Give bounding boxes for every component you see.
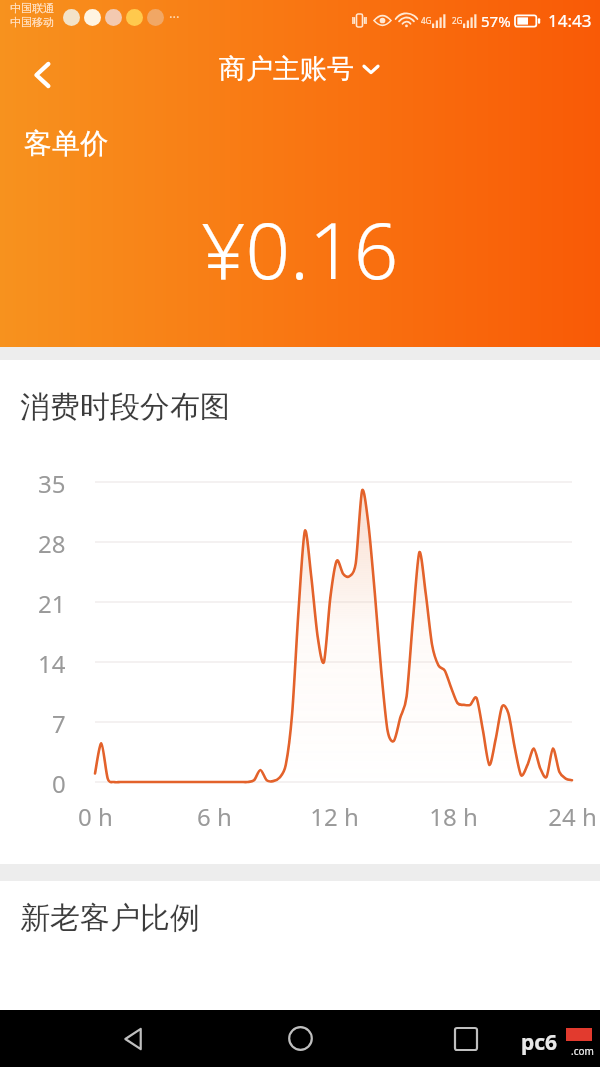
staticText: 28 <box>38 527 66 560</box>
staticText: ¥0.16 <box>201 196 399 302</box>
staticText: 中国移动 <box>10 15 54 29</box>
staticText: 客单价 <box>24 126 108 161</box>
staticText: 21 <box>38 587 66 620</box>
staticText: 2G <box>452 15 463 26</box>
staticText: 0 h <box>78 800 113 833</box>
staticText: 新老客户比例 <box>20 899 200 937</box>
staticText: 4G <box>421 15 432 26</box>
staticText: 7 <box>52 707 66 740</box>
staticText: 老客 <box>128 1017 172 1045</box>
staticText: 35 <box>38 467 66 500</box>
staticText: 12 h <box>310 800 359 833</box>
staticText: 14 <box>38 647 66 680</box>
staticText: 0 <box>52 767 66 800</box>
button[interactable]: Recent apps <box>434 1010 498 1067</box>
button[interactable]: Back <box>102 1010 166 1067</box>
staticText: .com <box>571 1044 594 1058</box>
staticText: pc6 <box>521 1028 558 1057</box>
staticText: 14:43 <box>548 9 592 32</box>
staticText: 中国联通 <box>10 1 54 15</box>
staticText: 18 h <box>429 800 478 833</box>
staticText: 24 h <box>548 800 597 833</box>
staticText: 57% <box>481 11 511 31</box>
button[interactable]: 商户主账号 <box>219 52 381 86</box>
button[interactable]: Home <box>268 1010 332 1067</box>
staticText: 消费时段分布图 <box>20 388 230 426</box>
staticText: ··· <box>169 8 180 26</box>
staticText: 6 h <box>197 800 232 833</box>
button[interactable]: Back <box>14 46 72 104</box>
staticText: 商户主账号 <box>219 52 354 86</box>
